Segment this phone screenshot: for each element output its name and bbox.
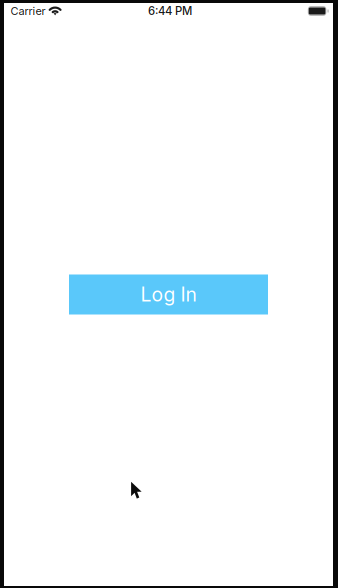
staticText: Log In <box>140 283 196 306</box>
staticText: Carrier <box>10 4 45 18</box>
staticText: 6:44 PM <box>148 4 192 18</box>
button[interactable]: Log In <box>69 274 268 314</box>
